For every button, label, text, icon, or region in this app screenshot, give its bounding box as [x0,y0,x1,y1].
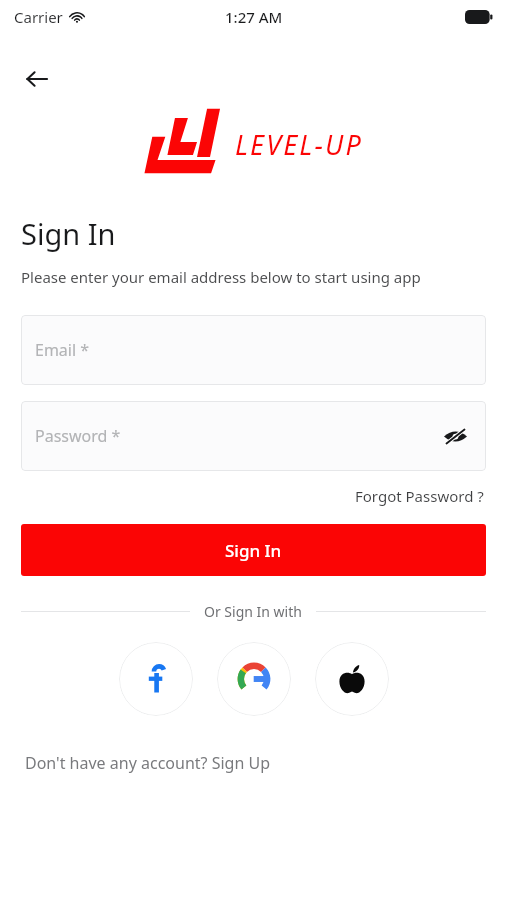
button[interactable]: Sign in with Facebook [119,642,193,716]
button[interactable]: Show password [438,419,472,453]
button[interactable]: Back [14,56,60,102]
staticText: Don't have any account? Sign Up [25,752,482,774]
staticText: 1:27 AM [225,7,283,27]
button[interactable]: Don't have any account? Sign Up [21,749,486,777]
button[interactable]: Password * [21,401,486,471]
button[interactable]: Sign in with Apple [315,642,389,716]
staticText: Or Sign In with [204,602,302,621]
button[interactable]: Email * [21,315,486,385]
staticText: Please enter your email address below to… [21,267,421,287]
staticText: Carrier [14,7,63,27]
button[interactable]: Sign In [21,524,486,576]
button[interactable]: Forgot Password ? [353,484,486,508]
staticText: Password * [35,425,121,447]
staticText: Sign In [21,214,116,253]
staticText: Forgot Password ? [355,486,484,506]
staticText: LEVEL-UP [235,126,364,163]
staticText: Sign In [225,539,282,562]
staticText: Email * [35,339,90,361]
button[interactable]: Sign in with Google [217,642,291,716]
